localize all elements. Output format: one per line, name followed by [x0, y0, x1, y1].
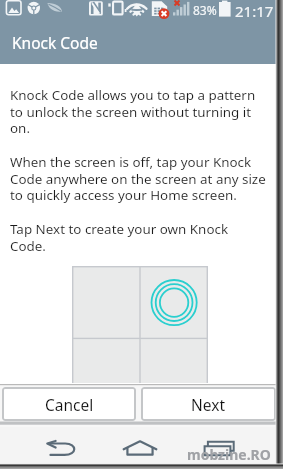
- button[interactable]: Recent apps: [191, 429, 247, 467]
- staticText: Cancel: [45, 394, 94, 415]
- button[interactable]: Back: [34, 429, 90, 467]
- staticText: mobzine.RO: [187, 445, 271, 464]
- staticText: 83%: [193, 2, 217, 18]
- staticText: Next: [191, 394, 226, 415]
- button[interactable]: Cancel: [2, 387, 136, 421]
- staticText: Knock Code allows you to tap a pattern t…: [10, 86, 266, 137]
- button[interactable]: Home: [112, 429, 168, 467]
- staticText: 21:17: [235, 1, 274, 21]
- staticText: Tap Next to create your own Knock Code.: [10, 220, 266, 255]
- staticText: Knock Code: [12, 32, 98, 53]
- button[interactable]: Next: [141, 387, 276, 421]
- staticText: When the screen is off, tap your Knock C…: [10, 153, 266, 204]
